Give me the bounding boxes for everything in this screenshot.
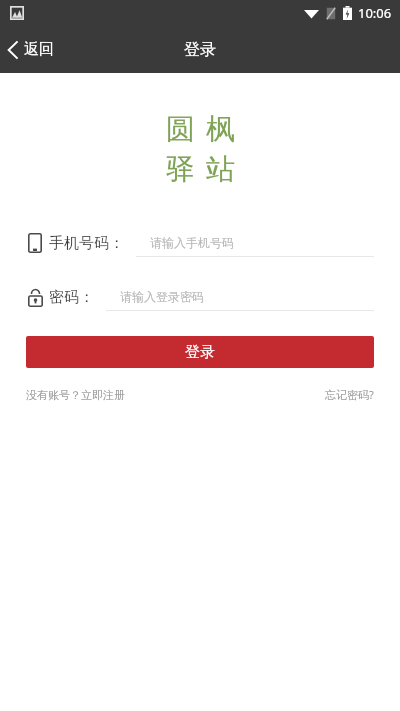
staticText: 登录 [184, 40, 216, 60]
staticText: 密码： [49, 288, 94, 307]
staticText: 返回 [24, 40, 54, 59]
button[interactable]: 忘记密码? [325, 383, 374, 406]
staticText: 忘记密码? [325, 387, 374, 402]
staticText: 登录 [185, 343, 215, 362]
staticText: 手机号码： [49, 234, 124, 253]
staticText: 驿 [166, 151, 195, 188]
button[interactable]: 没有账号？立即注册 [26, 384, 125, 406]
staticText: 站 [206, 151, 235, 188]
button[interactable]: 登录 [26, 336, 374, 368]
staticText: 请输入手机号码 [150, 235, 234, 250]
staticText: 枫 [206, 111, 235, 148]
staticText: 请输入登录密码 [120, 289, 204, 304]
staticText: 没有账号？立即注册 [26, 388, 125, 402]
button[interactable]: 手机号码： [0, 226, 400, 260]
staticText: 10:06 [358, 4, 392, 22]
button[interactable]: 密码： [0, 280, 400, 314]
button[interactable]: 返回 [0, 26, 64, 73]
staticText: 圆 [166, 111, 195, 148]
